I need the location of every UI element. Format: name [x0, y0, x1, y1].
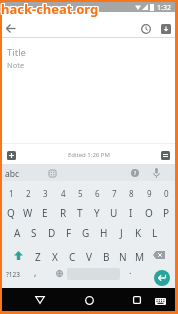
staticText: 5	[78, 188, 83, 199]
button[interactable]: .	[129, 264, 132, 276]
staticText: P	[163, 206, 170, 220]
staticText: C	[69, 250, 76, 264]
staticText: K	[135, 226, 142, 240]
button[interactable]	[56, 270, 63, 277]
button[interactable]	[7, 151, 16, 160]
staticText: ?	[134, 170, 137, 177]
button[interactable]: J	[114, 225, 128, 241]
button[interactable]: B	[99, 249, 113, 265]
button[interactable]	[141, 24, 151, 34]
button[interactable]: E	[38, 205, 52, 221]
button[interactable]: V	[82, 249, 96, 265]
button[interactable]	[14, 251, 23, 260]
button[interactable]: C	[65, 249, 79, 265]
button[interactable]: T	[73, 205, 87, 221]
button[interactable]: 5	[73, 185, 87, 201]
button[interactable]: R	[56, 205, 70, 221]
staticText: H	[100, 226, 108, 240]
staticText: hack-cheat.org	[0, 0, 98, 17]
button[interactable]: 3	[38, 185, 52, 201]
button[interactable]: 7	[107, 185, 121, 201]
button[interactable]: L	[148, 225, 162, 241]
staticText: Y	[94, 206, 100, 220]
button[interactable]: A	[10, 225, 24, 241]
staticText: X	[52, 250, 58, 264]
button[interactable]: G	[79, 225, 93, 241]
staticText: M	[135, 250, 145, 264]
staticText: 9	[147, 188, 152, 199]
staticText: R	[60, 206, 67, 220]
button[interactable]	[49, 170, 56, 177]
button[interactable]	[85, 296, 94, 305]
button[interactable]: 2	[21, 185, 35, 201]
staticText: B	[103, 250, 110, 264]
button[interactable]: P	[159, 205, 173, 221]
button[interactable]: N	[116, 249, 130, 265]
staticText: F	[66, 226, 72, 240]
staticText: hack-cheat.org	[1, 0, 99, 17]
staticText: hack-cheat.org	[2, 1, 100, 19]
staticText: D	[48, 226, 56, 240]
button[interactable]: D	[45, 225, 59, 241]
button[interactable]	[6, 24, 16, 33]
staticText: hack-cheat.org	[2, 0, 100, 18]
button[interactable]: ?	[131, 169, 139, 177]
staticText: 0	[164, 188, 169, 199]
button[interactable]: I	[124, 205, 138, 221]
staticText: G	[82, 226, 90, 240]
button[interactable]: ,	[34, 266, 37, 278]
button[interactable]: Title	[7, 46, 26, 59]
button[interactable]	[133, 296, 141, 304]
button[interactable]	[35, 296, 45, 304]
staticText: L	[152, 226, 158, 240]
staticText: hack-cheat.org	[0, 1, 98, 19]
button[interactable]: F	[62, 225, 76, 241]
button[interactable]: 6	[90, 185, 104, 201]
staticText: V	[86, 250, 92, 264]
staticText: 1:32	[157, 3, 171, 13]
staticText: 2	[26, 188, 31, 199]
button[interactable]: K	[131, 225, 145, 241]
staticText: hack-cheat.org	[2, 0, 100, 17]
button[interactable]: 4	[56, 185, 70, 201]
button[interactable]: X	[48, 249, 62, 265]
button[interactable]: 1	[4, 185, 18, 201]
button[interactable]: ?123	[6, 270, 20, 279]
button[interactable]: Y	[90, 205, 104, 221]
button[interactable]	[153, 168, 160, 179]
button[interactable]: Z	[31, 249, 45, 265]
staticText: I	[129, 206, 133, 220]
staticText: Z	[35, 250, 41, 264]
button[interactable]: 0	[159, 185, 173, 201]
button[interactable]	[153, 251, 165, 259]
button[interactable]	[161, 151, 170, 160]
button[interactable]: Q	[4, 205, 18, 221]
staticText: 3	[43, 188, 48, 199]
button[interactable]: abc	[5, 168, 20, 180]
staticText: W	[23, 206, 33, 220]
button[interactable]: O	[142, 205, 156, 221]
staticText: A	[14, 226, 21, 240]
button[interactable]	[155, 298, 166, 305]
button[interactable]: 8	[124, 185, 138, 201]
staticText: 8	[129, 188, 134, 199]
staticText: U	[110, 206, 118, 220]
staticText: hack-cheat.org	[1, 0, 99, 18]
button[interactable]: U	[107, 205, 121, 221]
staticText: hack-cheat.org	[0, 0, 98, 18]
button[interactable]: M	[133, 249, 147, 265]
button[interactable]: 9	[142, 185, 156, 201]
button[interactable]: H	[97, 225, 111, 241]
button[interactable]	[161, 24, 171, 34]
staticText: O	[145, 206, 153, 220]
button[interactable]: W	[21, 205, 35, 221]
staticText: 6	[95, 188, 100, 199]
staticText: 7	[112, 188, 117, 199]
button[interactable]	[2, 12, 175, 37]
button[interactable]	[154, 270, 170, 286]
button[interactable]: Note	[7, 60, 25, 70]
staticText: hack-cheat.org	[1, 1, 99, 19]
button[interactable]: S	[27, 225, 41, 241]
staticText: 1	[9, 188, 14, 199]
